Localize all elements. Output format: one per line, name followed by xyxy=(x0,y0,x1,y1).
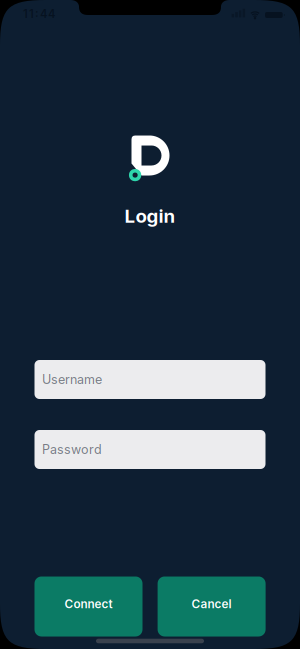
staticText: Password xyxy=(42,442,102,457)
staticText: Cancel xyxy=(192,597,232,611)
staticText: Connect xyxy=(64,597,112,611)
staticText: 1 1 : 4 4 xyxy=(23,7,55,21)
button[interactable]: Connect xyxy=(34,576,142,636)
staticText: Login xyxy=(124,205,175,227)
button[interactable]: Password xyxy=(34,430,265,469)
button[interactable]: Username xyxy=(34,360,265,399)
staticText: Username xyxy=(42,372,102,387)
button[interactable]: Cancel xyxy=(158,576,266,636)
